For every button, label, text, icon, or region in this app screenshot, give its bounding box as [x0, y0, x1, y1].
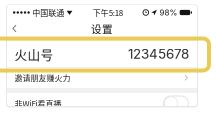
staticText: 中国联通 — [32, 7, 64, 18]
staticText: 12345678 — [128, 46, 189, 62]
button[interactable]: Back — [7, 20, 22, 37]
button[interactable]: 非WiFi看直播 — [7, 93, 197, 114]
staticText: 98% — [159, 8, 177, 17]
staticText: 邀请朋友赚火力 — [14, 72, 70, 84]
staticText: 非WiFi看直播 — [14, 98, 61, 109]
staticText: 设置 — [91, 21, 113, 36]
button[interactable]: 邀请朋友赚火力 — [7, 67, 197, 88]
staticText: 火山号 — [14, 45, 53, 63]
staticText: 下午5:18 — [93, 7, 123, 18]
button[interactable]: 火山号 — [7, 41, 197, 67]
